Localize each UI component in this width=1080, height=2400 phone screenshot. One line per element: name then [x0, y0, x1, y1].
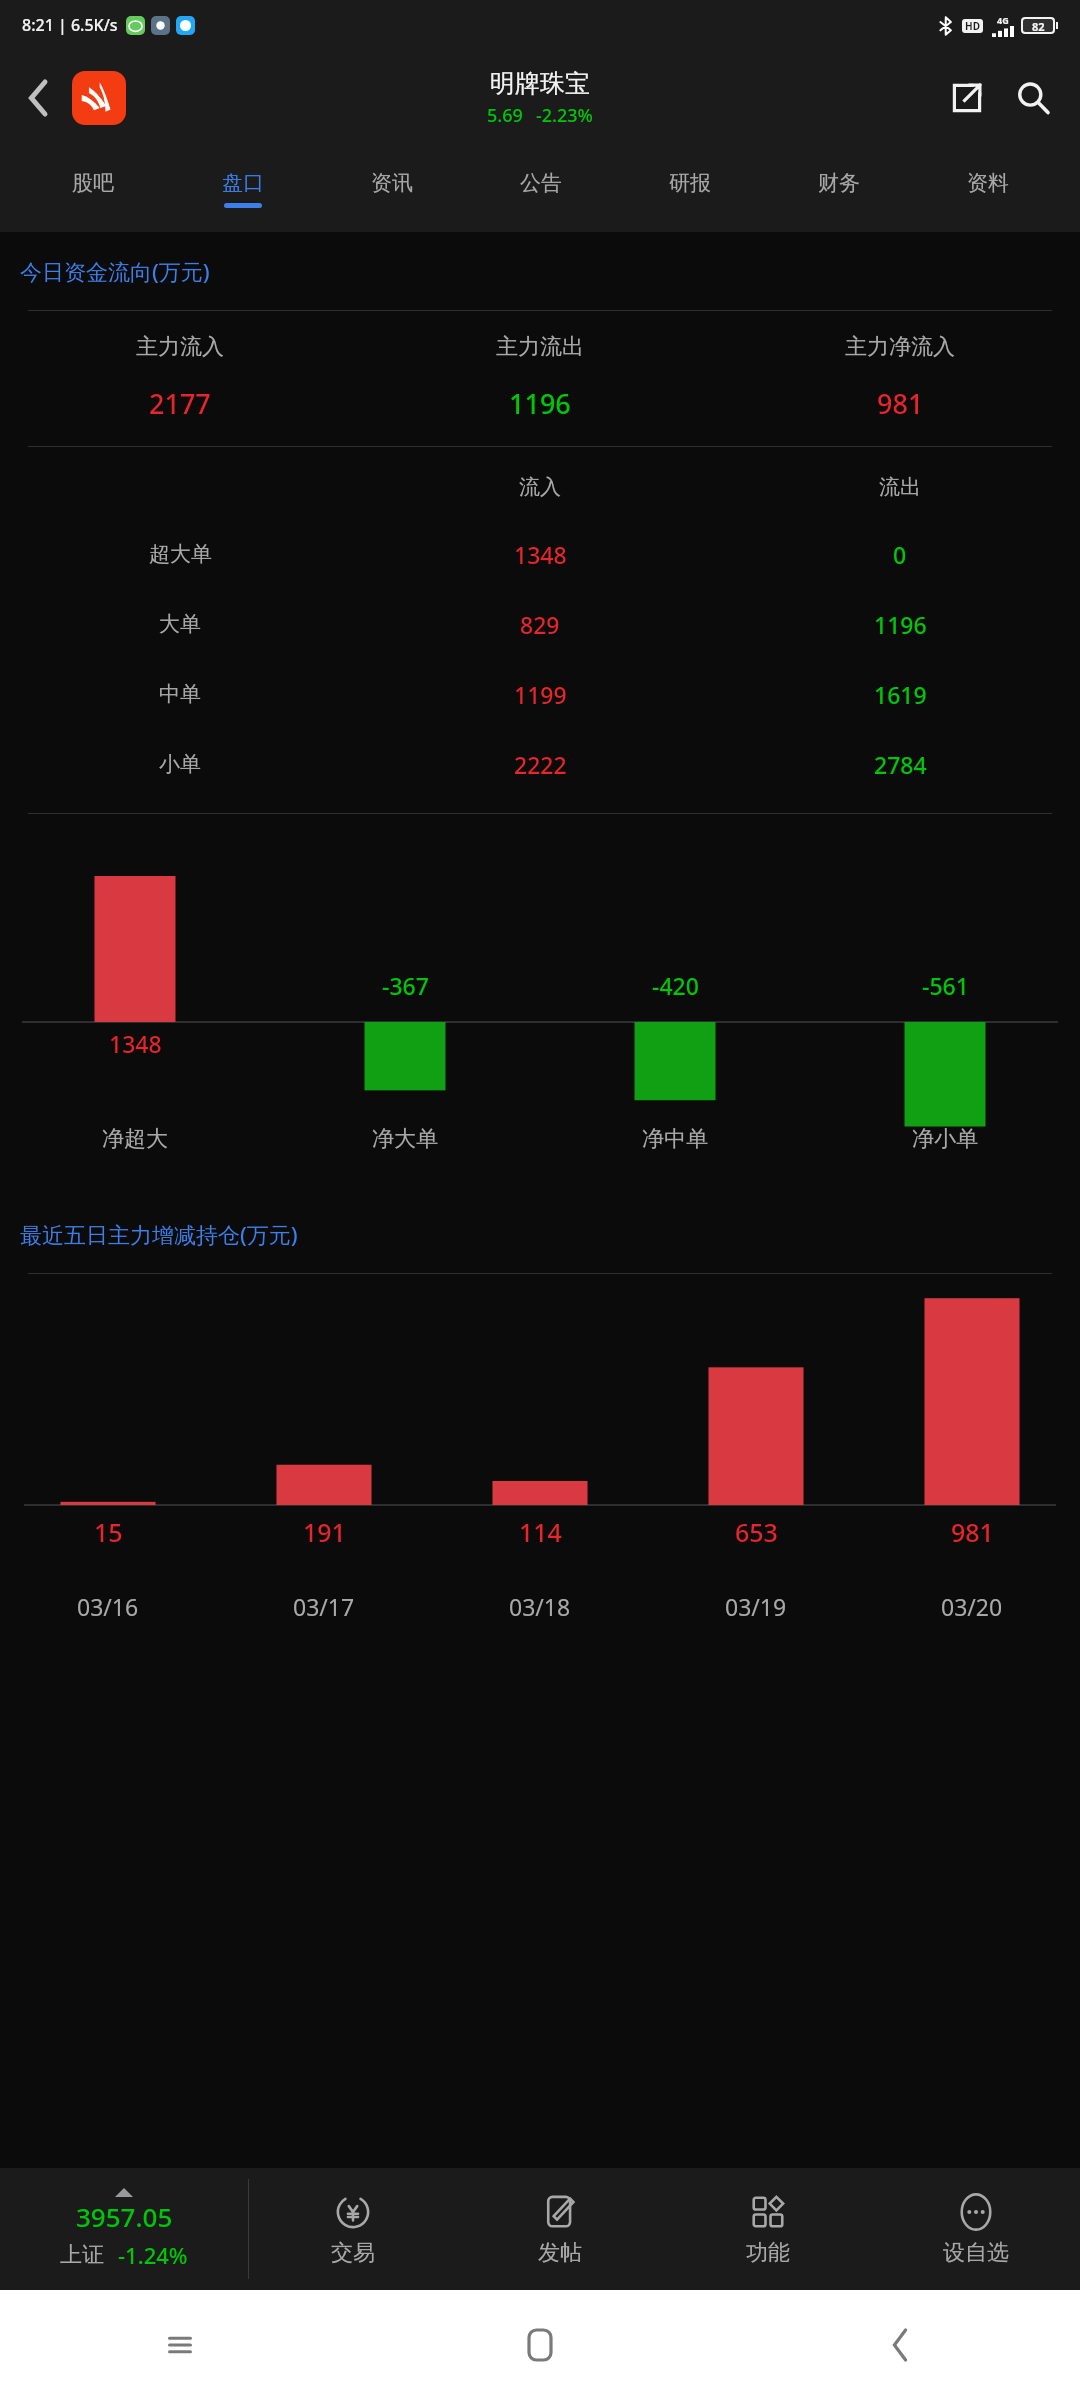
button[interactable]: Search: [1000, 65, 1066, 131]
staticText: 主力流出: [496, 333, 584, 361]
staticText: 上证: [60, 2241, 104, 2269]
staticText: 2177: [149, 385, 211, 422]
staticText: 流入: [519, 474, 561, 500]
staticText: 净中单: [642, 1125, 708, 1153]
staticText: 03/19: [725, 1591, 787, 1622]
staticText: -2.23%: [536, 103, 593, 128]
staticText: 功能: [746, 2239, 790, 2267]
staticText: 653: [735, 1515, 778, 1549]
staticText: 交易: [331, 2239, 375, 2267]
staticText: 财务: [818, 170, 860, 196]
staticText: 流出: [879, 474, 921, 500]
staticText: 超大单: [149, 541, 212, 567]
staticText: HD: [965, 19, 980, 33]
button[interactable]: 资料: [913, 146, 1062, 232]
staticText: 明牌珠宝: [490, 68, 590, 99]
staticText: 2784: [874, 749, 927, 780]
staticText: 4G: [997, 14, 1009, 26]
staticText: -1.24%: [118, 2240, 188, 2270]
staticText: 股吧: [72, 170, 114, 196]
button[interactable]: 中单: [0, 659, 1080, 729]
button[interactable]: 资讯: [317, 146, 466, 232]
staticText: 1196: [509, 385, 571, 422]
staticText: 发帖: [538, 2239, 582, 2267]
staticText: 资讯: [371, 170, 413, 196]
button[interactable]: 功能: [664, 2168, 872, 2290]
button[interactable]: 发帖: [456, 2168, 664, 2290]
staticText: 今日资金流向(万元): [20, 256, 210, 286]
staticText: 981: [951, 1515, 994, 1549]
staticText: 829: [520, 609, 560, 640]
staticText: 15: [94, 1515, 123, 1549]
button[interactable]: 大单: [0, 589, 1080, 659]
staticText: 盘口: [222, 170, 264, 196]
staticText: 03/16: [77, 1591, 139, 1622]
staticText: 设自选: [943, 2239, 1009, 2267]
staticText: 小单: [159, 751, 201, 777]
button[interactable]: 研报: [615, 146, 764, 232]
staticText: 研报: [669, 170, 711, 196]
staticText: 最近五日主力增减持仓(万元): [20, 1219, 298, 1249]
staticText: 大单: [159, 611, 201, 637]
staticText: 1199: [514, 679, 567, 710]
staticText: 114: [519, 1515, 562, 1549]
staticText: 公告: [520, 170, 562, 196]
button[interactable]: 股吧: [18, 146, 168, 232]
staticText: 2222: [514, 749, 567, 780]
button[interactable]: 盘口: [168, 146, 317, 232]
button[interactable]: 超大单: [0, 519, 1080, 589]
button[interactable]: 财务: [764, 146, 913, 232]
staticText: 981: [877, 385, 924, 422]
staticText: 03/20: [941, 1591, 1003, 1622]
button[interactable]: App logo: [72, 71, 126, 125]
staticText: 主力流入: [136, 333, 224, 361]
button[interactable]: Share: [934, 65, 1000, 131]
staticText: 净大单: [372, 1125, 438, 1153]
staticText: 1619: [874, 679, 927, 710]
button[interactable]: 3957.05: [0, 2168, 248, 2290]
staticText: 3957.05: [76, 2199, 173, 2234]
staticText: 5.69: [487, 103, 523, 128]
staticText: 03/18: [509, 1591, 571, 1622]
staticText: 1196: [874, 609, 927, 640]
staticText: -367: [382, 970, 429, 1001]
staticText: 1348: [514, 539, 567, 570]
staticText: 主力净流入: [845, 333, 955, 361]
button[interactable]: 公告: [466, 146, 615, 232]
staticText: 资料: [967, 170, 1009, 196]
staticText: 0: [893, 539, 907, 570]
staticText: 净超大: [102, 1125, 168, 1153]
button[interactable]: Recents: [0, 2290, 360, 2400]
staticText: -561: [922, 970, 969, 1001]
button[interactable]: 交易: [249, 2168, 456, 2290]
button[interactable]: Back: [12, 71, 66, 125]
button[interactable]: 设自选: [872, 2168, 1080, 2290]
button[interactable]: Home: [360, 2290, 720, 2400]
staticText: 03/17: [293, 1591, 355, 1622]
staticText: 净小单: [912, 1125, 978, 1153]
staticText: 82: [1032, 19, 1045, 32]
staticText: 1348: [109, 1028, 162, 1059]
staticText: 中单: [159, 681, 201, 707]
staticText: 191: [303, 1515, 346, 1549]
staticText: 8:21 | 6.5K/s: [22, 14, 118, 36]
staticText: -420: [652, 970, 699, 1001]
button[interactable]: Back: [720, 2290, 1080, 2400]
button[interactable]: 小单: [0, 729, 1080, 799]
